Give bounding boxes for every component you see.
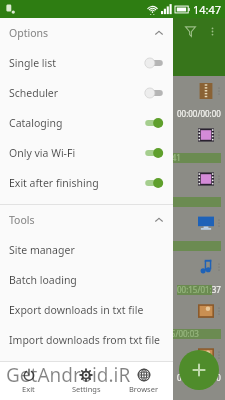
staticText: Options (9, 26, 49, 40)
staticText: Browser (129, 384, 159, 394)
button[interactable]: Scheduler (0, 78, 173, 108)
staticText: Batch loading (9, 273, 77, 287)
staticText: 00:05/00:03 (155, 328, 199, 339)
button[interactable]: 00:22/00:41 (0, 164, 225, 208)
button[interactable]: Export downloads in txt file (0, 295, 173, 325)
staticText: Single list (9, 56, 57, 70)
button[interactable]: Site manager (0, 235, 173, 265)
button[interactable]: 00:15/01:37 (0, 252, 225, 296)
staticText: Import downloads from txt file (9, 333, 161, 347)
button[interactable]: Exit (0, 362, 57, 400)
staticText: 14:47 (193, 2, 222, 17)
button[interactable]: Batch loading (0, 265, 173, 295)
button[interactable]: Cataloging (0, 108, 173, 138)
staticText: 00:22/00:41 (106, 196, 150, 207)
button[interactable]: 00:00/00:00 (0, 76, 225, 120)
staticText: 00:15/01:37 (177, 284, 221, 295)
staticText: Cataloging (9, 116, 63, 130)
staticText: Exit after finishing (9, 176, 99, 190)
staticText: Settings (72, 384, 101, 394)
button[interactable]: 00:05/00:03 (0, 296, 225, 340)
staticText: 00:00/00:00 (177, 108, 221, 119)
button[interactable]: Options (0, 18, 173, 48)
staticText: Scheduler (9, 86, 59, 100)
button[interactable]: Settings (57, 362, 115, 400)
staticText: 00:16/00:41 (137, 152, 181, 163)
staticText: 00:00/00:00 (177, 372, 221, 383)
button[interactable]: Only via Wi-Fi (0, 138, 173, 168)
button[interactable]: Tools (0, 205, 173, 235)
staticText: Only via Wi-Fi (9, 146, 76, 160)
staticText: Export downloads in txt file (9, 303, 144, 317)
button[interactable]: 00:16/00:41 (0, 120, 225, 164)
button[interactable]: Single list (0, 48, 173, 78)
button[interactable]: Add download (179, 350, 219, 390)
button[interactable]: More options (201, 20, 223, 42)
staticText: Exit (22, 384, 35, 394)
button[interactable]: Filter (179, 20, 201, 42)
staticText: GetAndroid.iR (6, 362, 131, 388)
button[interactable]: 00:00/00:00 (0, 340, 225, 384)
staticText: Tools (9, 213, 35, 227)
staticText: Site manager (9, 243, 75, 257)
button[interactable]: Browser (115, 362, 173, 400)
button[interactable]: 00:20/00:39 (0, 208, 225, 252)
button[interactable]: Exit after finishing (0, 168, 173, 198)
button[interactable]: Import downloads from txt file (0, 325, 173, 355)
